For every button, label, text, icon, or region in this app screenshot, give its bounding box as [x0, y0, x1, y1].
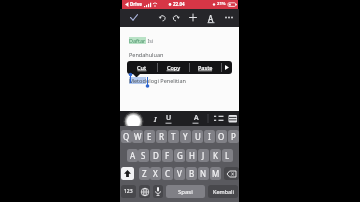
staticText: I [208, 131, 211, 142]
button[interactable]: Z [139, 167, 150, 180]
staticText: Daftar [129, 37, 146, 44]
staticText: J [202, 150, 205, 161]
staticText: K [213, 150, 218, 161]
button[interactable]: D [150, 149, 161, 162]
staticText: Copy [167, 64, 181, 71]
button[interactable]: U [192, 130, 203, 143]
button[interactable] [128, 11, 142, 25]
button[interactable]: M [210, 167, 221, 180]
button[interactable]: B [186, 167, 197, 180]
button[interactable]: P [228, 130, 239, 143]
button[interactable] [170, 11, 183, 25]
button[interactable] [156, 11, 169, 25]
button[interactable]: Kembali [208, 185, 238, 198]
button[interactable]: O [216, 130, 227, 143]
staticText: V [177, 168, 182, 179]
staticText: F [165, 150, 170, 161]
button[interactable]: H [186, 149, 197, 162]
staticText: Kembali [213, 188, 234, 195]
button[interactable]: L [222, 149, 233, 162]
staticText: Cut [137, 64, 147, 71]
staticText: Z [142, 168, 147, 179]
staticText: Metod [129, 77, 146, 84]
staticText: W [134, 131, 142, 142]
button[interactable]: K [210, 149, 221, 162]
staticText: ologi Penelitian [146, 77, 186, 84]
staticText: E [147, 131, 152, 142]
button[interactable]: Spasi [166, 185, 205, 198]
staticText: A [194, 113, 199, 123]
button[interactable] [222, 11, 236, 25]
button[interactable]: T [168, 130, 179, 143]
staticText: Drive [130, 1, 142, 7]
button[interactable]: C [162, 167, 173, 180]
button[interactable]: Paste [190, 61, 221, 74]
staticText: O [218, 131, 225, 142]
staticText: I [154, 114, 157, 124]
button[interactable]: I [204, 130, 215, 143]
button[interactable]: A [191, 112, 201, 124]
button[interactable]: U [164, 112, 174, 124]
button[interactable]: F [162, 149, 173, 162]
staticText: A [130, 150, 136, 161]
staticText: N [200, 168, 207, 179]
staticText: 22.04 [173, 1, 185, 7]
button[interactable]: Q [121, 130, 132, 143]
button[interactable]: Y [180, 130, 191, 143]
staticText: X [153, 168, 158, 179]
button[interactable]: W [132, 130, 143, 143]
staticText: A [208, 13, 214, 24]
button[interactable]: Copy [158, 61, 189, 74]
button[interactable]: 123 [121, 185, 136, 198]
button[interactable]: I [150, 113, 160, 125]
staticText: L [225, 150, 230, 161]
button[interactable]: Cut [127, 61, 157, 74]
staticText: C [165, 168, 171, 179]
staticText: Y [183, 131, 188, 142]
staticText: Paste [198, 64, 213, 71]
staticText: 21% [217, 1, 226, 7]
staticText: S [141, 150, 146, 161]
button[interactable] [153, 185, 163, 198]
staticText: T [171, 131, 176, 142]
button[interactable]: N [198, 167, 209, 180]
button[interactable] [139, 185, 150, 198]
staticText: 123 [124, 188, 133, 195]
button[interactable]: R [156, 130, 167, 143]
button[interactable] [224, 167, 239, 180]
staticText: Isi [146, 37, 154, 44]
staticText: R [159, 131, 164, 142]
button[interactable] [121, 167, 134, 180]
staticText: Spasi [178, 188, 193, 196]
button[interactable]: V [174, 167, 185, 180]
staticText: D [153, 150, 159, 161]
staticText: G [177, 150, 183, 161]
staticText: U [195, 131, 201, 142]
staticText: Pendahuluan [129, 51, 164, 58]
staticText: P [231, 131, 236, 142]
button[interactable]: S [138, 149, 149, 162]
button[interactable] [186, 11, 200, 25]
button[interactable] [123, 111, 144, 132]
staticText: Q [123, 131, 130, 142]
staticText: M [212, 168, 220, 179]
button[interactable]: A [127, 149, 138, 162]
button[interactable]: X [150, 167, 161, 180]
button[interactable]: E [144, 130, 155, 143]
staticText: H [189, 150, 195, 161]
staticText: B [189, 168, 195, 179]
staticText: U [166, 113, 172, 123]
button[interactable]: G [174, 149, 185, 162]
button[interactable]: A [206, 12, 216, 24]
button[interactable] [222, 61, 232, 74]
button[interactable]: Drive [122, 0, 238, 9]
button[interactable]: J [198, 149, 209, 162]
